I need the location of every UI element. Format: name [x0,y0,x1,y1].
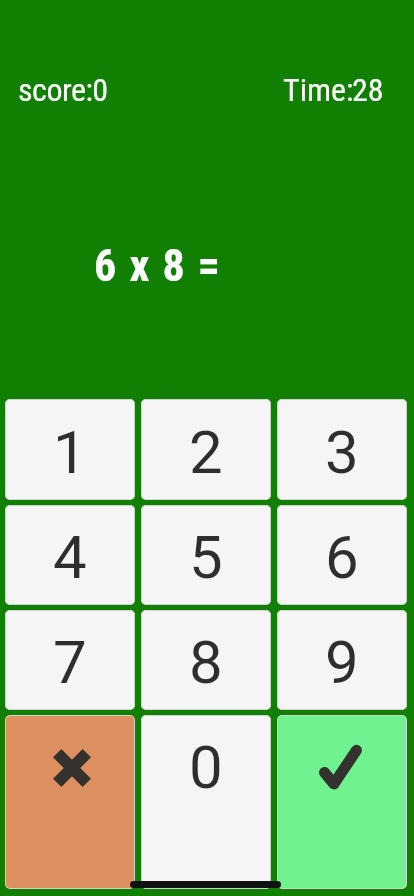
button[interactable]: 0 [141,715,271,889]
staticText: 7 [53,627,87,697]
button[interactable]: 6 [277,505,407,605]
staticText: 4 [53,522,87,592]
staticText: 5 [189,522,223,592]
staticText: 9 [325,627,359,697]
staticText: 1 [53,417,87,487]
button[interactable]: 5 [141,505,271,605]
staticText: 6 [325,522,359,592]
button[interactable]: 9 [277,610,407,710]
staticText: 2 [189,417,223,487]
staticText: 3 [325,417,359,487]
button[interactable] [277,715,407,889]
button[interactable]: 4 [5,505,135,605]
button[interactable]: 2 [141,399,271,500]
button[interactable]: 7 [5,610,135,710]
staticText: Time: [283,71,354,109]
button[interactable]: 8 [141,610,271,710]
staticText: score:0 [18,71,108,109]
button[interactable]: 3 [277,399,407,500]
button[interactable] [5,715,135,889]
staticText: 28 [352,71,384,109]
staticText: 0 [189,732,223,802]
button[interactable]: 1 [5,399,135,500]
staticText: 8 [189,627,223,697]
staticText: 6 x 8 = [94,240,222,292]
